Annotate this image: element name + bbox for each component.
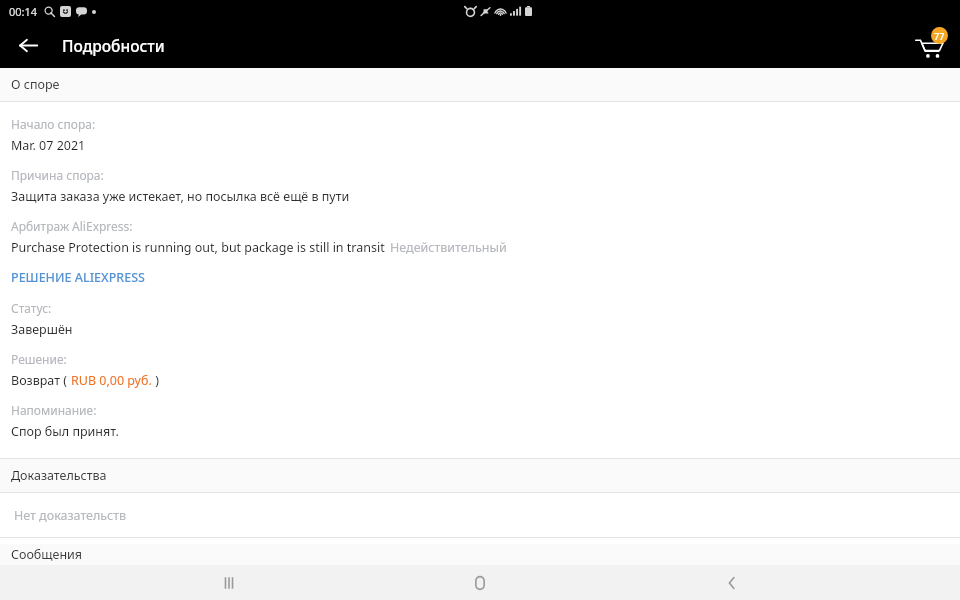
staticText: Сообщения [11, 546, 83, 563]
staticText: 77 [934, 30, 945, 42]
button[interactable]: РЕШЕНИЕ ALIEXPRESS [11, 269, 145, 286]
staticText: Решение: [11, 351, 67, 367]
staticText: Недействительный [390, 239, 507, 256]
staticText: Статус: [11, 300, 52, 316]
button[interactable]: Shopping cart, 77 items [910, 25, 950, 65]
button[interactable]: Home [457, 565, 503, 600]
staticText: Арбитраж AliExpress: [11, 218, 133, 234]
staticText: 00:14 [9, 4, 38, 19]
staticText: Напоминание: [11, 402, 97, 418]
staticText: Защита заказа уже истекает, но посылка в… [11, 188, 350, 205]
staticText: Начало спора: [11, 116, 96, 132]
staticText: Возврат ( [11, 372, 71, 389]
staticText: Подробности [62, 35, 165, 56]
staticText: Доказательства [11, 467, 107, 484]
button[interactable]: Recent apps [206, 565, 252, 600]
staticText: Purchase Protection is running out, but … [11, 239, 385, 256]
staticText: РЕШЕНИЕ ALIEXPRESS [11, 269, 145, 286]
staticText: RUB 0,00 руб. [71, 372, 152, 389]
staticText: О споре [11, 76, 60, 93]
staticText: ) [152, 372, 160, 389]
staticText: Спор был принят. [11, 423, 119, 440]
staticText: Mar. 07 2021 [11, 137, 86, 154]
staticText: Нет доказательств [14, 507, 127, 524]
staticText: Завершён [11, 321, 73, 338]
button[interactable]: Back [709, 565, 755, 600]
button[interactable]: Back [12, 29, 44, 61]
staticText: Причина спора: [11, 167, 104, 183]
